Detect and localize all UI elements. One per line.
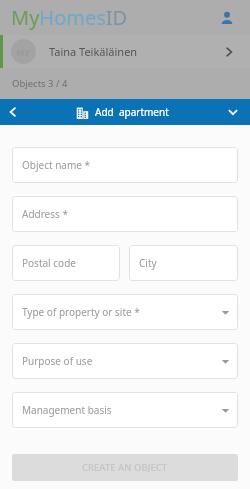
staticText: Purpose of use [22,354,93,368]
button[interactable]: Management basis [12,392,238,428]
button[interactable]: Expand [220,99,246,125]
staticText: Postal code [22,256,76,270]
button[interactable]: Postal code [12,245,120,281]
staticText: City [139,256,157,270]
button[interactable]: CREATE AN OBJECT [12,454,238,481]
button[interactable]: Address * [12,196,238,232]
staticText: Taina Teikäläinen [49,44,138,59]
button[interactable]: МУ [0,35,250,68]
staticText: MyHomesID [11,4,128,31]
staticText: CREATE AN OBJECT [82,461,168,474]
button[interactable]: Add apartment [76,105,169,119]
staticText: Add apartment [95,105,169,119]
staticText: Address * [22,207,68,221]
staticText: Object name * [22,158,91,172]
staticText: Objects 3 / 4 [12,77,68,90]
button[interactable]: Type of property or site * [12,294,238,330]
staticText: МУ [16,46,31,58]
button[interactable]: Account [214,5,240,31]
button[interactable]: Back [0,99,26,125]
button[interactable]: City [129,245,238,281]
button[interactable]: Object name * [12,147,238,183]
staticText: Management basis [22,403,112,417]
button[interactable]: Purpose of use [12,343,238,379]
staticText: Type of property or site * [22,305,140,319]
